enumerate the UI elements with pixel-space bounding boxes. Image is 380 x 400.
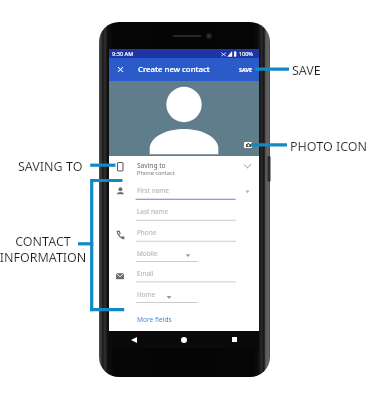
- button[interactable]: Home: [159, 331, 209, 348]
- staticText: Email: [137, 269, 154, 278]
- button[interactable]: Recent apps: [209, 331, 259, 348]
- staticText: More fields: [137, 315, 172, 324]
- button[interactable]: Back: [109, 331, 159, 348]
- staticText: SAVE: [239, 66, 253, 73]
- staticText: PHOTO ICON: [290, 138, 368, 155]
- button[interactable]: Mobile: [133, 247, 253, 260]
- staticText: 9:30 AM: [112, 50, 134, 58]
- staticText: Create new contact: [138, 64, 210, 75]
- button[interactable]: Email: [133, 267, 253, 280]
- button[interactable]: Phone: [133, 226, 253, 239]
- button[interactable]: First name: [133, 184, 253, 197]
- staticText: Saving to: [137, 161, 166, 170]
- staticText: SAVING TO: [18, 158, 83, 175]
- button[interactable]: Saving to: [109, 156, 259, 180]
- staticText: 100%: [239, 50, 253, 57]
- staticText: Phone contact: [137, 169, 175, 177]
- staticText: CONTACT INFORMATION: [0, 233, 87, 265]
- button[interactable]: Home: [133, 288, 253, 301]
- staticText: Home: [137, 290, 156, 299]
- staticText: Phone: [137, 228, 157, 237]
- staticText: Last name: [137, 207, 169, 216]
- button[interactable]: More fields: [133, 312, 176, 327]
- staticText: SAVE: [292, 62, 321, 79]
- staticText: First name: [137, 186, 169, 195]
- button[interactable]: Close: [113, 62, 127, 76]
- button[interactable]: Add photo: [244, 142, 252, 148]
- button[interactable]: SAVE: [233, 61, 259, 78]
- staticText: Mobile: [137, 249, 158, 258]
- button[interactable]: Last name: [133, 205, 253, 218]
